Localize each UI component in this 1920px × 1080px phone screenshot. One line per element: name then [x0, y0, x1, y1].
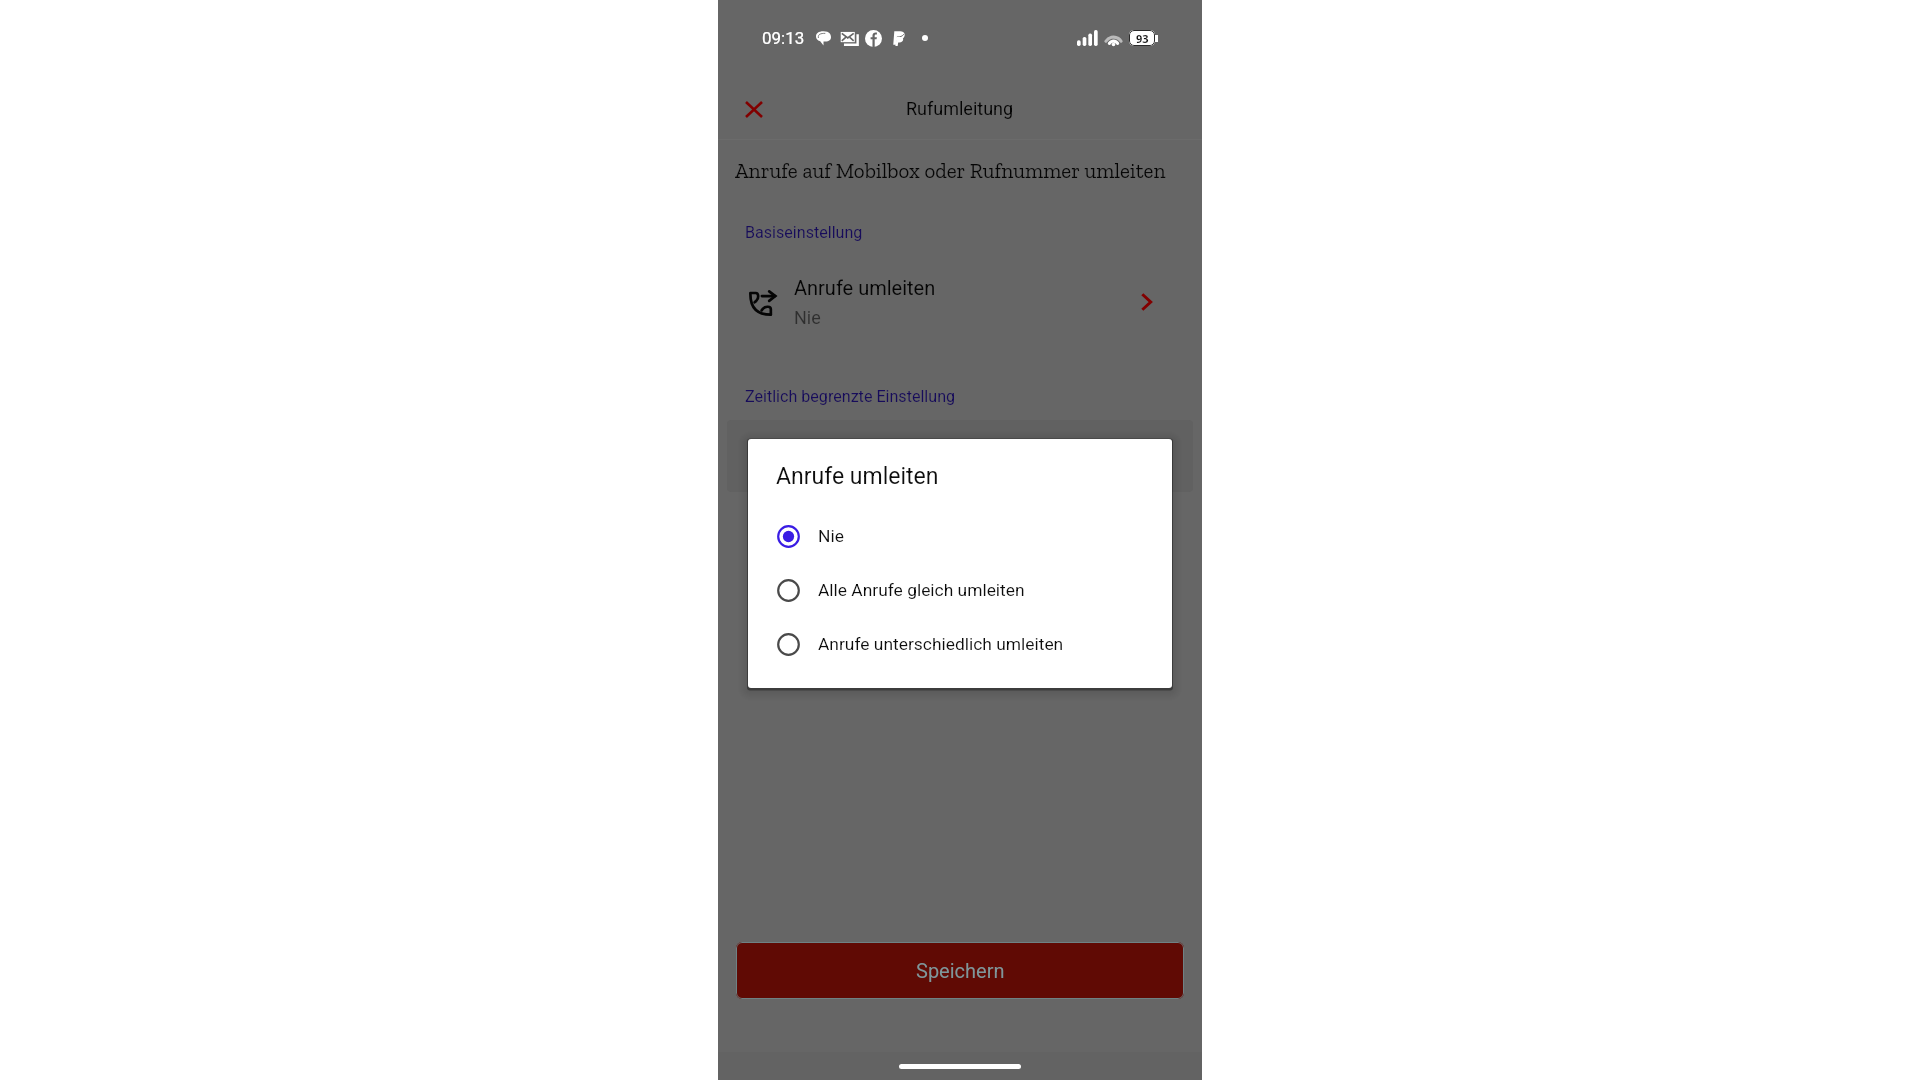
staticText: Speichern: [916, 959, 1005, 982]
staticText: Anrufe auf Mobilbox oder Rufnummer umlei…: [735, 158, 1166, 183]
staticText: 09:13: [762, 28, 805, 48]
button[interactable]: Speichern: [736, 942, 1184, 999]
staticText: Alle Anrufe gleich umleiten: [818, 580, 1025, 600]
staticText: Rufumleitung: [906, 98, 1014, 119]
staticText: Zeitlich begrenzte Einstellung: [745, 387, 956, 406]
button[interactable]: Anrufe umleiten: [718, 273, 1202, 331]
button[interactable]: Nie: [748, 509, 1172, 563]
staticText: Nie: [818, 526, 844, 546]
staticText: Anrufe umleiten: [776, 463, 939, 490]
button[interactable]: Alle Anrufe gleich umleiten: [748, 563, 1172, 617]
button[interactable]: Anrufe unterschiedlich umleiten: [748, 617, 1172, 671]
staticText: Basiseinstellung: [745, 223, 863, 242]
staticText: Nie: [794, 307, 821, 328]
staticText: 93: [1136, 31, 1149, 46]
staticText: Anrufe unterschiedlich umleiten: [818, 634, 1064, 654]
button[interactable]: Schliessen: [730, 85, 778, 133]
staticText: Anrufe umleiten: [794, 276, 936, 299]
